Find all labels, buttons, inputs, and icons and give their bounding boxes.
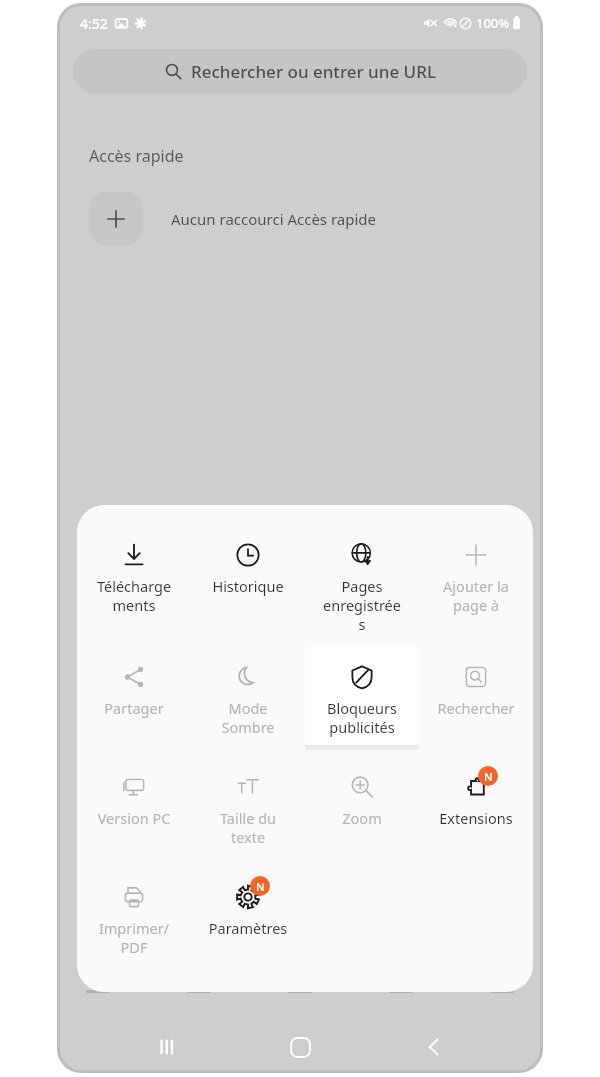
staticText: Zoom (307, 808, 417, 828)
button[interactable]: Zoom (307, 769, 417, 828)
button[interactable]: Imprimer/ PDF (79, 879, 189, 957)
button[interactable]: Partager (79, 659, 189, 718)
staticText: Bloqueurs publicités (307, 698, 417, 737)
other: Ajouter un raccourci (89, 192, 143, 246)
button[interactable]: N (193, 879, 303, 938)
button[interactable]: Historique (193, 537, 303, 596)
staticText: Paramètres (193, 918, 303, 938)
staticText: Partager (79, 698, 189, 718)
staticText: Mode Sombre (193, 698, 303, 737)
staticText: Ajouter la page à (421, 576, 531, 615)
button[interactable]: Rechercher (421, 659, 531, 718)
button[interactable]: Télécharge ments (79, 537, 189, 615)
staticText: Imprimer/ PDF (79, 918, 189, 957)
staticText: Rechercher ou entrer une URL (191, 60, 436, 83)
staticText: 4:52 (80, 14, 108, 33)
staticText: Télécharge ments (79, 576, 189, 615)
button[interactable]: Ajouter un raccourci (89, 192, 377, 246)
staticText: N (484, 769, 493, 784)
staticText: Taille du texte (193, 808, 303, 847)
button[interactable]: Taille du texte (193, 769, 303, 847)
staticText: Extensions (421, 808, 531, 828)
staticText: Version PC (79, 808, 189, 828)
button[interactable]: Bloqueurs publicités (307, 659, 417, 737)
button[interactable]: Back (407, 1024, 461, 1070)
staticText: Accès rapide (89, 145, 184, 167)
button[interactable]: Ajouter la page à (421, 537, 531, 615)
button[interactable]: Pages enregistrée s (307, 537, 417, 634)
button[interactable]: Recents (140, 1024, 194, 1070)
button[interactable]: Home (273, 1024, 327, 1070)
staticText: 100% (476, 14, 510, 32)
button[interactable]: Rechercher ou entrer une URL (73, 49, 527, 94)
staticText: Pages enregistrée s (307, 576, 417, 634)
button[interactable]: Version PC (79, 769, 189, 828)
staticText: Historique (193, 576, 303, 596)
button[interactable]: Mode Sombre (193, 659, 303, 737)
button[interactable]: N (421, 769, 531, 828)
staticText: Rechercher (421, 698, 531, 718)
staticText: Aucun raccourci Accès rapide (171, 209, 377, 229)
staticText: N (256, 879, 265, 894)
